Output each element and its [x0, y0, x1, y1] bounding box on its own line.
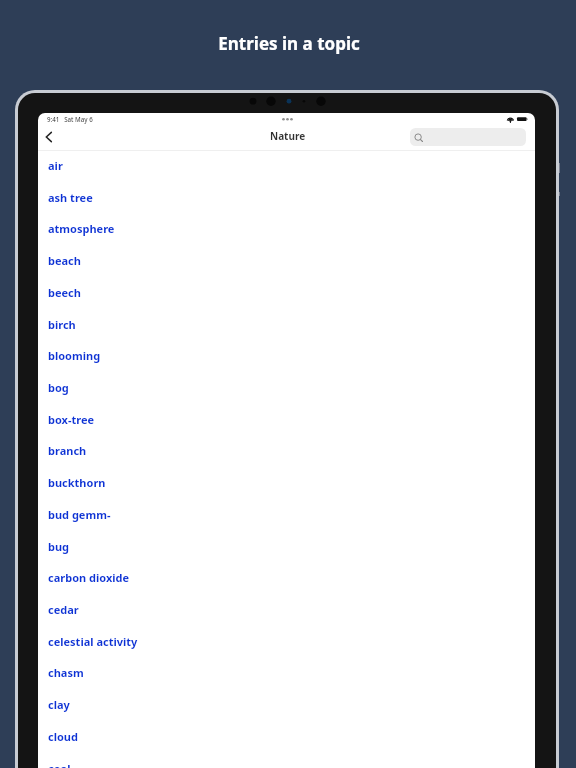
staticText: carbon dioxide: [48, 570, 130, 585]
button[interactable]: celestial activity: [38, 625, 535, 657]
button[interactable]: Back: [38, 126, 60, 148]
button[interactable]: carbon dioxide: [38, 561, 535, 593]
button[interactable]: blooming: [38, 339, 535, 371]
button[interactable]: cloud: [38, 720, 535, 752]
staticText: clay: [48, 697, 70, 712]
staticText: ash tree: [48, 190, 93, 205]
staticText: cloud: [48, 729, 78, 744]
staticText: Nature: [270, 129, 306, 143]
staticText: box-tree: [48, 412, 95, 427]
staticText: blooming: [48, 348, 101, 363]
staticText: Entries in a topic: [1, 32, 576, 55]
button[interactable]: Search: [410, 128, 526, 146]
button[interactable]: bug: [38, 530, 535, 562]
staticText: 9:41 Sat May 6: [47, 115, 93, 123]
button[interactable]: atmosphere: [38, 212, 535, 244]
staticText: birch: [48, 317, 76, 332]
button[interactable]: birch: [38, 308, 535, 340]
button[interactable]: branch: [38, 434, 535, 466]
staticText: bog: [48, 380, 69, 395]
staticText: beech: [48, 285, 81, 300]
staticText: bud gemm-: [48, 507, 111, 522]
button[interactable]: box-tree: [38, 403, 535, 435]
staticText: air: [48, 158, 63, 173]
button[interactable]: ash tree: [38, 181, 535, 213]
button[interactable]: air: [38, 149, 535, 181]
staticText: coal: [48, 761, 71, 768]
button[interactable]: chasm: [38, 656, 535, 688]
staticText: chasm: [48, 665, 84, 680]
button[interactable]: beach: [38, 244, 535, 276]
button[interactable]: bog: [38, 371, 535, 403]
button[interactable]: coal: [38, 752, 535, 768]
staticText: beach: [48, 253, 81, 268]
button[interactable]: beech: [38, 276, 535, 308]
button[interactable]: bud gemm-: [38, 498, 535, 530]
staticText: branch: [48, 443, 87, 458]
button[interactable]: buckthorn: [38, 466, 535, 498]
staticText: bug: [48, 539, 70, 554]
button[interactable]: clay: [38, 688, 535, 720]
staticText: celestial activity: [48, 634, 138, 649]
staticText: buckthorn: [48, 475, 106, 490]
staticText: atmosphere: [48, 221, 115, 236]
button[interactable]: cedar: [38, 593, 535, 625]
staticText: cedar: [48, 602, 79, 617]
